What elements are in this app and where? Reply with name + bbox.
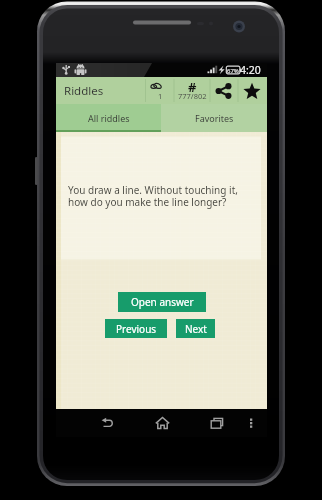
staticText: Open answer [131, 295, 194, 309]
button[interactable]: Favorites [161, 104, 267, 132]
staticText: 1 [158, 91, 163, 101]
staticText: # [188, 78, 197, 96]
staticText: Riddles [64, 83, 104, 99]
staticText: Previous [116, 322, 157, 336]
button[interactable]: More options [242, 409, 260, 437]
staticText: 67% [227, 67, 239, 75]
button[interactable]: Favorite [238, 77, 266, 104]
button[interactable]: Share [210, 77, 238, 104]
button[interactable]: Riddle number [174, 77, 210, 104]
staticText: 777/802 [178, 91, 207, 101]
button[interactable]: Home [151, 409, 173, 437]
button[interactable]: All riddles [56, 104, 161, 132]
staticText: 4:20 [240, 63, 261, 77]
staticText: All riddles [88, 112, 130, 124]
staticText: Favorites [195, 112, 234, 124]
staticText: Next [185, 322, 207, 336]
staticText: You draw a line. Without touching it, ho… [68, 183, 238, 209]
button[interactable]: Difficulty [146, 77, 174, 104]
button[interactable]: Next [176, 319, 215, 338]
button[interactable]: Recent apps [206, 409, 228, 437]
button[interactable]: Previous [105, 319, 167, 338]
button[interactable]: Open answer [118, 292, 206, 312]
button[interactable]: Back [97, 409, 119, 437]
